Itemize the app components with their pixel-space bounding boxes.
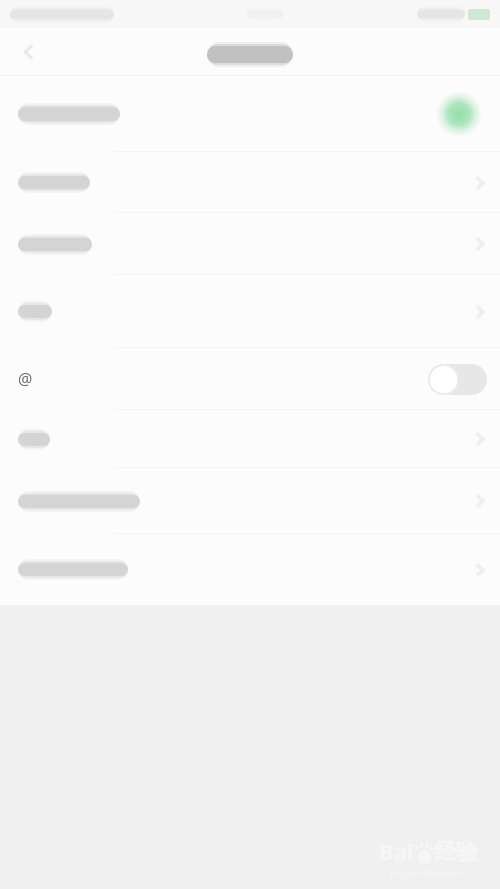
button[interactable] <box>0 275 500 348</box>
button[interactable] <box>0 410 500 468</box>
button[interactable] <box>0 468 500 534</box>
button[interactable] <box>0 534 500 605</box>
button[interactable]: Back <box>14 37 44 67</box>
button[interactable] <box>0 76 500 152</box>
staticText: @ <box>18 368 33 390</box>
button[interactable]: @ <box>0 348 500 410</box>
button[interactable] <box>0 152 500 213</box>
button[interactable] <box>0 213 500 275</box>
